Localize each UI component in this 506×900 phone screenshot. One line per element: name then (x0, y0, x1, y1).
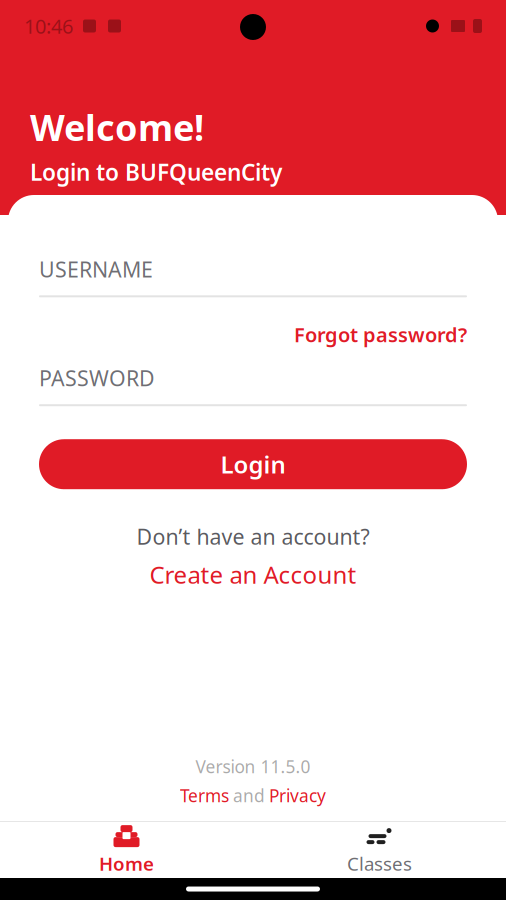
staticText: Home (99, 851, 154, 876)
staticText: PASSWORD (39, 364, 155, 392)
staticText: Version 11.5.0 (195, 755, 310, 778)
staticText: Classes (347, 851, 412, 876)
button[interactable]: Classes (253, 816, 506, 884)
staticText: USERNAME (39, 255, 153, 283)
staticText: and (233, 784, 265, 807)
staticText: Privacy (269, 784, 326, 807)
button[interactable]: Privacy (269, 784, 326, 807)
button[interactable]: Create an Account (149, 556, 356, 592)
staticText: Welcome! (30, 103, 204, 151)
button[interactable]: Terms (180, 784, 229, 807)
staticText: Don’t have an account? (136, 522, 369, 550)
staticText: Login to BUFQueenCity (30, 157, 282, 187)
staticText: Login (220, 448, 285, 480)
button[interactable]: Forgot password? (39, 319, 467, 350)
staticText: Terms (180, 784, 229, 807)
staticText: 10:46 (24, 13, 73, 39)
staticText: Forgot password? (294, 321, 467, 348)
button[interactable]: Home (0, 816, 253, 884)
staticText: Create an Account (149, 558, 356, 590)
button[interactable]: Login (39, 439, 467, 489)
